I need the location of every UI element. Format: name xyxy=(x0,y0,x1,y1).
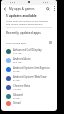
button[interactable]: More options xyxy=(51,5,57,12)
staticText: Android System WebView xyxy=(13,75,47,79)
button[interactable]: Android System Intelligence xyxy=(6,65,52,74)
staticText: Gboard xyxy=(13,93,23,97)
staticText: 87 MB xyxy=(13,79,20,82)
button[interactable]: Back xyxy=(1,5,9,12)
staticText: My apps & games xyxy=(9,7,35,11)
staticText: 62 MB xyxy=(13,97,20,100)
button[interactable]: Gmail xyxy=(6,101,52,106)
staticText: 13.2 MB xyxy=(13,52,22,55)
button[interactable]: Android System WebView xyxy=(6,74,52,83)
staticText: Auto-update apps xyxy=(6,41,27,44)
staticText: Advanced Call Display xyxy=(13,48,42,52)
staticText: Gmail xyxy=(13,101,21,105)
staticText: Android System Intelligence xyxy=(13,66,50,70)
staticText: 26 MB xyxy=(13,70,20,73)
button[interactable]: Chrome Beta xyxy=(6,83,52,92)
staticText: Some apps are waiting to be updated and … xyxy=(6,19,52,25)
staticText: Chrome Beta xyxy=(13,84,31,88)
button[interactable]: Gboard xyxy=(6,92,52,101)
staticText: 22.8 MB xyxy=(13,61,22,64)
staticText: 140 MB xyxy=(13,88,21,91)
button[interactable]: Advanced Call Display xyxy=(6,47,52,56)
staticText: 5 updates available xyxy=(6,14,37,18)
button[interactable]: Android Auto xyxy=(6,56,52,65)
staticText: Android Auto xyxy=(13,57,31,61)
staticText: Recently updated apps xyxy=(6,31,41,35)
button[interactable]: Search xyxy=(45,5,51,12)
